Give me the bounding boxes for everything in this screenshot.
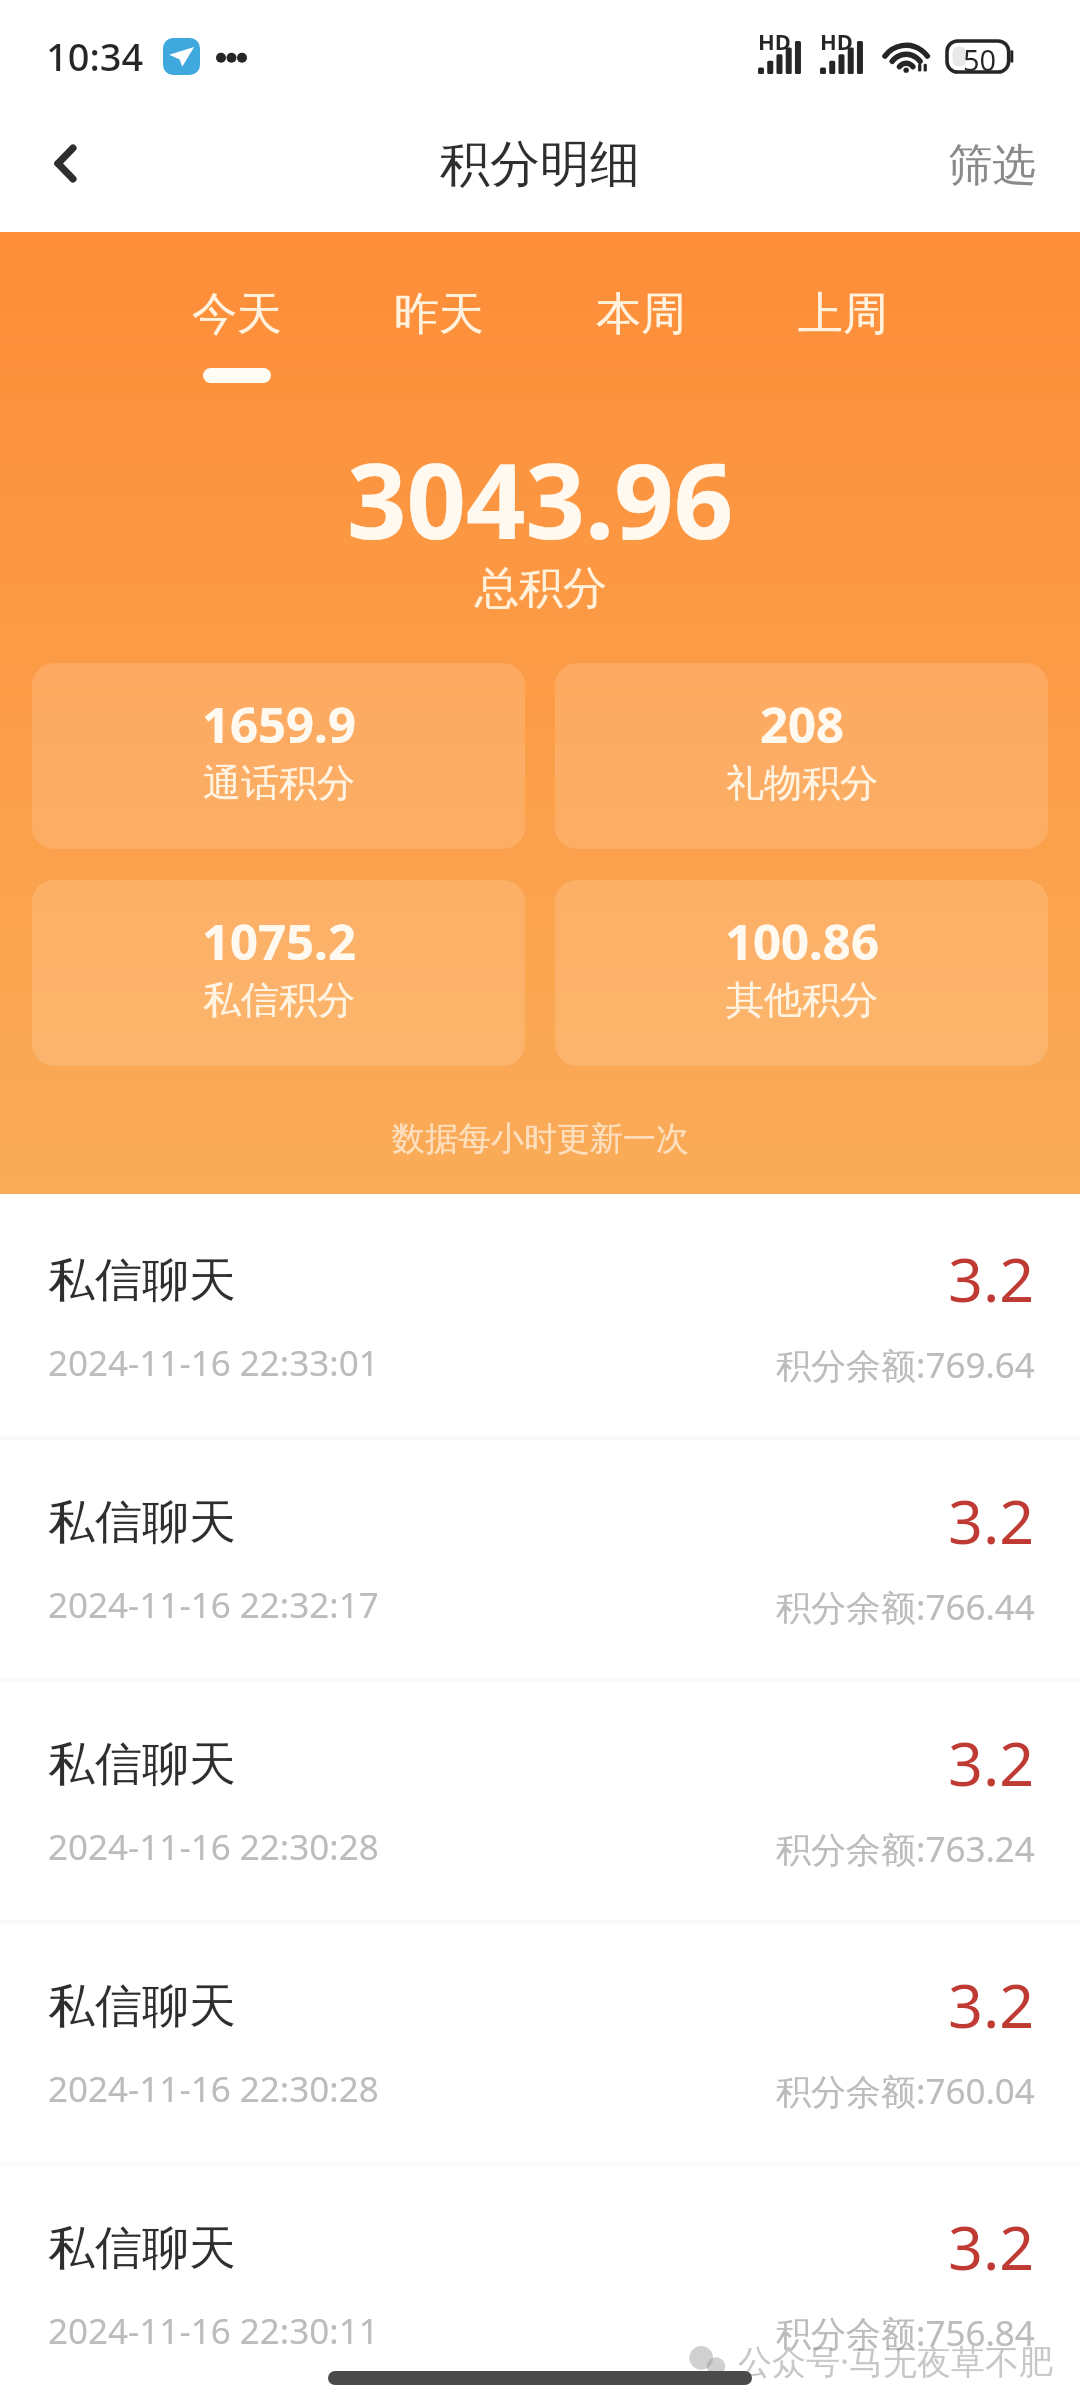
staticText: 3.2 <box>948 1963 1035 2046</box>
staticText: 其他积分 <box>726 976 878 1024</box>
button[interactable]: 今天 <box>136 286 338 396</box>
staticText: 积分余额:760.04 <box>776 2067 1035 2115</box>
staticText: HD <box>758 26 791 56</box>
button[interactable]: 私信聊天 <box>0 1436 1080 1678</box>
staticText: 私信聊天 <box>48 2219 236 2278</box>
staticText: 积分余额:769.64 <box>776 1341 1035 1389</box>
staticText: 2024-11-16 22:33:01 <box>48 1339 379 1387</box>
button[interactable]: 1659.9 <box>32 663 525 849</box>
staticText: 私信积分 <box>203 976 355 1024</box>
staticText: 2024-11-16 22:30:28 <box>48 1823 379 1871</box>
staticText: 积分余额:766.44 <box>776 1583 1035 1631</box>
staticText: 50 <box>963 40 997 71</box>
staticText: 100.86 <box>725 908 879 975</box>
staticText: 私信聊天 <box>48 1735 236 1794</box>
staticText: 上周 <box>798 286 888 343</box>
button[interactable]: 本周 <box>540 286 742 396</box>
button[interactable]: 100.86 <box>555 880 1048 1066</box>
staticText: 今天 <box>192 286 282 343</box>
staticText: 3.2 <box>948 1721 1035 1804</box>
button[interactable]: 筛选 <box>930 129 1054 216</box>
staticText: 本周 <box>596 286 686 343</box>
staticText: 2024-11-16 22:32:17 <box>48 1581 379 1629</box>
button[interactable]: 私信聊天 <box>0 1194 1080 1436</box>
staticText: 208 <box>760 691 845 758</box>
button[interactable]: 208 <box>555 663 1048 849</box>
staticText: 数据每小时更新一次 <box>392 1118 689 1160</box>
staticText: 3.2 <box>948 2205 1035 2288</box>
staticText: 2024-11-16 22:30:11 <box>48 2307 379 2355</box>
staticText: 公众号·马无夜草不肥 <box>738 2338 1054 2384</box>
staticText: HD <box>820 26 853 56</box>
button[interactable]: 1075.2 <box>32 880 525 1066</box>
staticText: 私信聊天 <box>48 1493 236 1552</box>
button[interactable]: Back <box>23 121 107 205</box>
button[interactable]: 私信聊天 <box>0 1678 1080 1920</box>
staticText: 私信聊天 <box>48 1977 236 2036</box>
staticText: 筛选 <box>948 138 1036 193</box>
staticText: 礼物积分 <box>726 759 878 807</box>
button[interactable]: 昨天 <box>338 286 540 396</box>
staticText: 积分余额:756.84 <box>776 2309 1035 2357</box>
staticText: 总积分 <box>475 561 607 616</box>
button[interactable]: 上周 <box>742 286 944 396</box>
staticText: 积分明细 <box>440 133 640 196</box>
staticText: 积分余额:763.24 <box>776 1825 1035 1873</box>
staticText: 昨天 <box>394 286 484 343</box>
button[interactable]: 私信聊天 <box>0 1920 1080 2162</box>
staticText: 通话积分 <box>203 759 355 807</box>
staticText: 2024-11-16 22:30:28 <box>48 2065 379 2113</box>
staticText: 3.2 <box>948 1479 1035 1562</box>
button[interactable]: 私信聊天 <box>0 2162 1080 2400</box>
staticText: 1659.9 <box>202 691 356 758</box>
staticText: 3.2 <box>948 1237 1035 1320</box>
staticText: 3043.96 <box>347 428 734 570</box>
staticText: 1075.2 <box>202 908 356 975</box>
staticText: 私信聊天 <box>48 1251 236 1310</box>
staticText: 10:34 <box>46 30 144 82</box>
